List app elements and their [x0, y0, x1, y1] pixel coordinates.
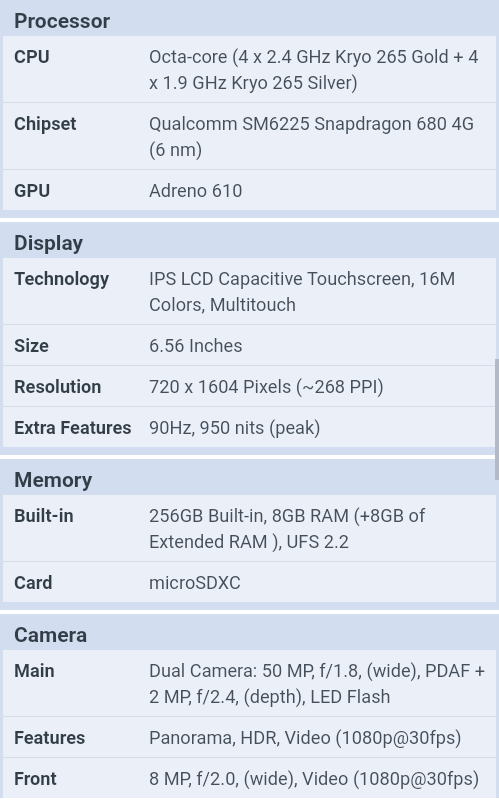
button[interactable]: GPU	[3, 170, 496, 210]
button[interactable]: Size	[3, 325, 496, 366]
button[interactable]: Extra Features	[3, 407, 496, 447]
button[interactable]: Memory	[0, 459, 499, 495]
button[interactable]: Card	[3, 562, 496, 602]
button[interactable]: Chipset	[3, 103, 496, 170]
staticText: Main	[14, 656, 149, 682]
staticText: Card	[14, 568, 149, 594]
staticText: IPS LCD Capacitive Touchscreen, 16M Colo…	[149, 264, 488, 316]
staticText: microSDXC	[149, 568, 488, 594]
staticText: GPU	[14, 176, 149, 202]
staticText: Chipset	[14, 109, 149, 135]
button[interactable]: Front	[3, 758, 496, 798]
staticText: 6.56 Inches	[149, 331, 488, 357]
button[interactable]: Features	[3, 717, 496, 758]
staticText: Resolution	[14, 372, 149, 398]
staticText: 720 x 1604 Pixels (~268 PPI)	[149, 372, 488, 398]
staticText: Size	[14, 331, 149, 357]
button[interactable]: Camera	[0, 614, 499, 650]
button[interactable]: Technology	[3, 258, 496, 325]
staticText: Front	[14, 764, 149, 790]
staticText: Camera	[14, 623, 88, 648]
button[interactable]: Display	[0, 222, 499, 258]
staticText: Adreno 610	[149, 176, 488, 202]
staticText: Qualcomm SM6225 Snapdragon 680 4G (6 nm)	[149, 109, 488, 161]
button[interactable]: CPU	[3, 36, 496, 103]
button[interactable]: Processor	[0, 0, 499, 36]
staticText: Dual Camera: 50 MP, f/1.8, (wide), PDAF …	[149, 656, 488, 708]
button[interactable]: Main	[3, 650, 496, 717]
staticText: Features	[14, 723, 149, 749]
staticText: 90Hz, 950 nits (peak)	[149, 413, 488, 439]
staticText: Panorama, HDR, Video (1080p@30fps)	[149, 723, 488, 749]
staticText: Built-in	[14, 501, 149, 527]
button[interactable]: Resolution	[3, 366, 496, 407]
staticText: CPU	[14, 42, 149, 68]
staticText: Octa-core (4 x 2.4 GHz Kryo 265 Gold + 4…	[149, 42, 488, 94]
staticText: 256GB Built-in, 8GB RAM (+8GB of Extende…	[149, 501, 488, 553]
staticText: Memory	[14, 468, 93, 493]
staticText: Technology	[14, 264, 149, 290]
staticText: Display	[14, 231, 84, 256]
staticText: Extra Features	[14, 413, 149, 439]
button[interactable]: Built-in	[3, 495, 496, 562]
staticText: 8 MP, f/2.0, (wide), Video (1080p@30fps)	[149, 764, 488, 790]
staticText: Processor	[14, 9, 111, 34]
